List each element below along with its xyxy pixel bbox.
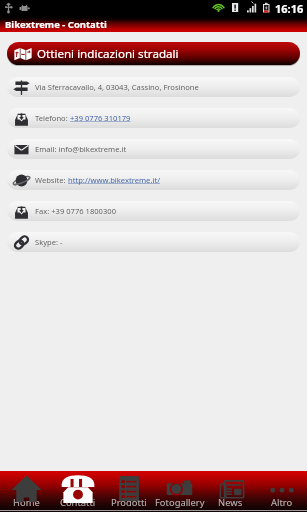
staticText: Bikextreme - Contatti (5, 18, 107, 31)
staticText: +39 0776 310179 (70, 113, 131, 123)
staticText: Website: (35, 175, 68, 185)
button[interactable]: Home (0, 471, 52, 512)
staticText: Skype: - (35, 237, 63, 247)
button[interactable]: Fotogallery (154, 471, 205, 512)
button[interactable]: Prodotti (103, 471, 154, 512)
button[interactable]: Altro (256, 471, 307, 512)
button[interactable]: Via Sferracavallo, 4, 03043, Cassino, Fr… (7, 77, 300, 97)
staticText: http://www.bikextreme.it/ (68, 175, 160, 185)
button[interactable]: Fax: +39 0776 1800300 (7, 201, 300, 221)
staticText: Fax: +39 0776 1800300 (35, 206, 116, 216)
staticText: News (218, 496, 243, 509)
button[interactable]: Ottieni indicazioni stradali (7, 42, 300, 65)
staticText: Home (13, 496, 40, 509)
button[interactable]: Skype: - (7, 232, 300, 252)
staticText: Telefono: (35, 113, 70, 123)
staticText: Prodotti (111, 496, 147, 509)
button[interactable]: Contatti (52, 471, 103, 512)
staticText: Email: info@bikextreme.it (35, 144, 127, 154)
staticText: 16:16 (275, 1, 304, 16)
button[interactable]: Email: info@bikextreme.it (7, 139, 300, 159)
staticText: Altro (271, 496, 293, 509)
button[interactable]: News (205, 471, 256, 512)
staticText: Fotogallery (155, 496, 205, 509)
button[interactable]: Telefono: (7, 108, 300, 128)
button[interactable]: Website: (7, 170, 300, 190)
staticText: Contatti (60, 496, 96, 509)
staticText: Ottieni indicazioni stradali (37, 46, 179, 62)
staticText: Via Sferracavallo, 4, 03043, Cassino, Fr… (35, 82, 199, 92)
